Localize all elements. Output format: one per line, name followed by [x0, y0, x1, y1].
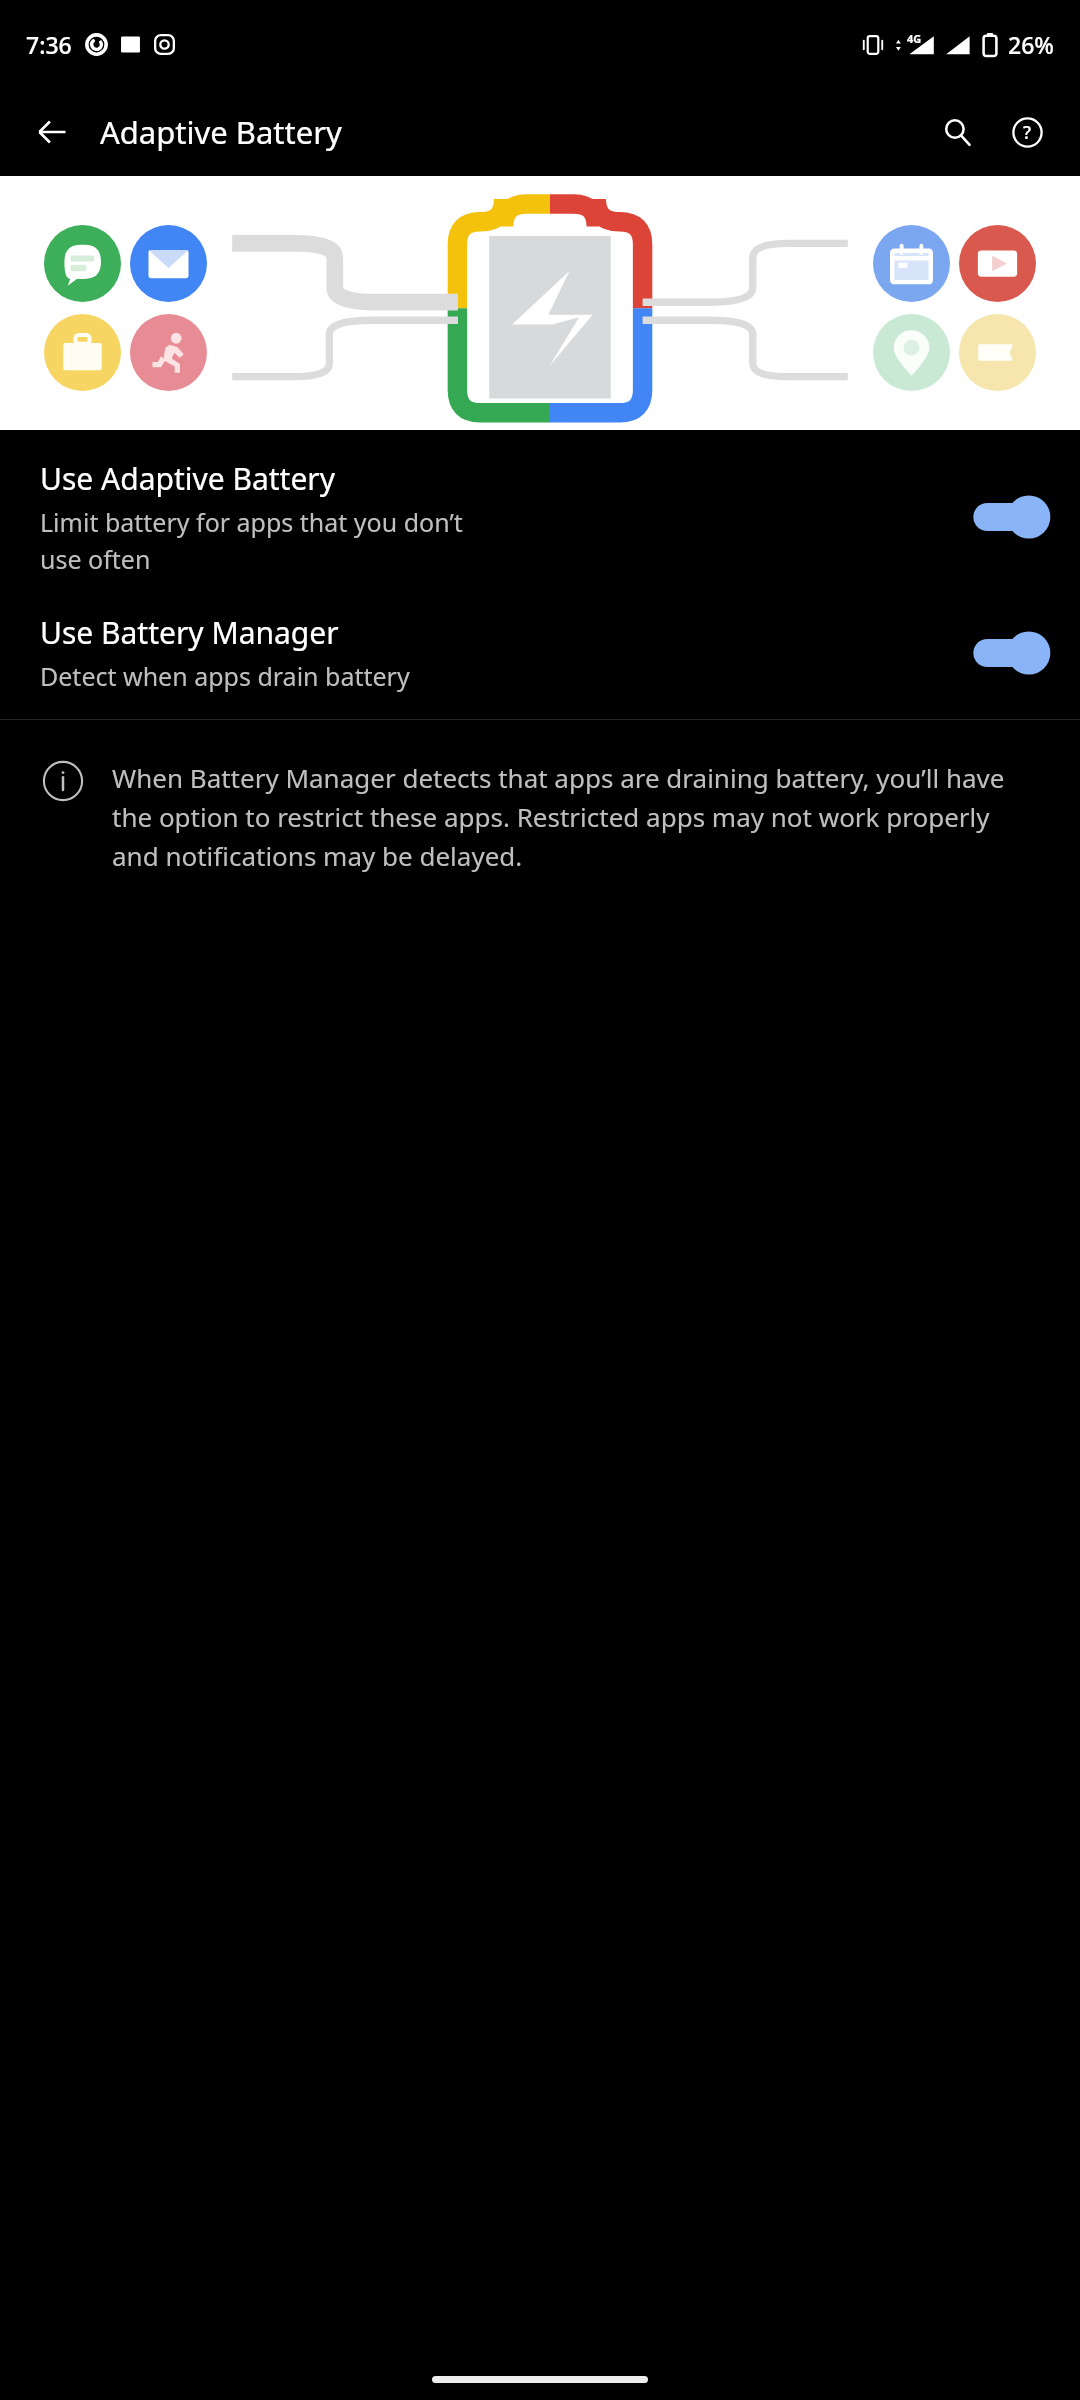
staticText: 4G — [907, 31, 922, 46]
button[interactable]: Help — [998, 103, 1056, 161]
staticText: 7:36 — [26, 29, 72, 60]
staticText: Use Adaptive Battery — [40, 458, 336, 499]
button[interactable]: Use Adaptive Battery — [0, 440, 1080, 594]
staticText: Adaptive Battery — [100, 111, 342, 153]
staticText: Detect when apps drain battery — [40, 659, 410, 693]
staticText: Use Battery Manager — [40, 612, 339, 653]
staticText: ? — [1023, 120, 1032, 145]
button[interactable]: Use Battery Manager — [0, 594, 1080, 711]
staticText: Limit battery for apps that you don’t us… — [40, 505, 463, 576]
staticText: 26% — [1008, 29, 1054, 60]
staticText: When Battery Manager detects that apps a… — [112, 760, 1042, 873]
button[interactable]: Search — [928, 103, 986, 161]
button[interactable]: Back — [24, 104, 80, 160]
